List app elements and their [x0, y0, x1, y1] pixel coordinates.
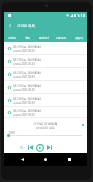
staticText: 재미있는 영어회화	[13, 44, 42, 49]
staticText: 즐겨찾기	[39, 36, 50, 39]
staticText: 김영철 2021.05.03	[13, 62, 35, 66]
staticText: 김영철 2021.05.03	[13, 113, 35, 117]
staticText: 0:00	[9, 131, 15, 135]
button[interactable]: Next track	[45, 143, 53, 151]
staticText: 김영철 2021.05.03	[13, 101, 35, 105]
staticText: 최근	[25, 36, 31, 39]
staticText: 가져온 목록	[17, 23, 35, 28]
button[interactable]: Queue	[17, 143, 25, 151]
staticText: 김영철 2021.05.03	[13, 88, 35, 92]
staticText: 김영철 2021.05.03	[13, 49, 35, 53]
staticText: 가져온	[8, 36, 16, 39]
button[interactable]: Previous track	[26, 143, 34, 151]
staticText: 내음악	[75, 36, 83, 39]
button[interactable]: 재미있는 영어회화	[4, 55, 87, 67]
button[interactable]: Back	[17, 154, 28, 165]
button[interactable]: Back	[4, 19, 16, 31]
staticText: 재미있는 영어회화	[13, 96, 42, 101]
button[interactable]: 즐겨찾기	[36, 36, 53, 41]
button[interactable]: 재미있는 영어회화	[4, 42, 87, 54]
staticText: 재미있는 영어회화	[13, 83, 42, 88]
button[interactable]: Recent apps	[64, 154, 75, 165]
staticText: 가져온 재생목록	[33, 121, 58, 126]
staticText: 다운로드	[56, 36, 67, 39]
staticText: 재미있는 영어회화	[13, 108, 42, 113]
button[interactable]: 다운로드	[53, 36, 70, 41]
button[interactable]: Home	[40, 154, 51, 165]
button[interactable]: 재미있는 영어회화	[4, 81, 87, 93]
button[interactable]: 재미있는 영어회화	[4, 94, 87, 106]
button[interactable]: 재미있는 영어회화	[4, 68, 87, 80]
button[interactable]: Play	[35, 143, 44, 152]
button[interactable]: Close	[79, 121, 86, 128]
staticText: 재생목록 없음	[36, 126, 55, 130]
staticText: 재미있는 영어회화	[13, 57, 42, 62]
button[interactable]: 최근	[20, 36, 36, 41]
button[interactable]: 내음악	[70, 36, 87, 41]
staticText: 1:18	[77, 13, 85, 18]
button[interactable]: 가져온	[4, 36, 20, 41]
staticText: 김영철 2021.05.03	[13, 75, 35, 79]
button[interactable]: 재미있는 영어회화	[4, 107, 87, 117]
staticText: 재미있는 영어회화	[13, 70, 42, 75]
